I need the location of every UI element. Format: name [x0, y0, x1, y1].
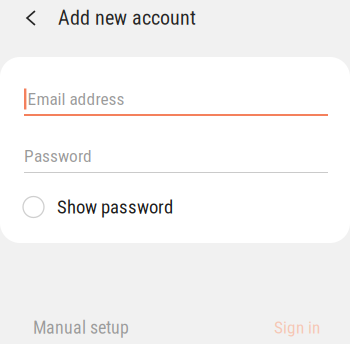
button[interactable]: Manual setup	[25, 308, 137, 344]
button[interactable]: Back	[16, 1, 46, 35]
staticText: Manual setup	[33, 317, 129, 338]
staticText: Email address	[27, 89, 124, 109]
staticText: Sign in	[274, 317, 320, 338]
staticText: Show password	[57, 196, 173, 218]
staticText: Add new account	[58, 6, 196, 30]
button[interactable]: Show password	[0, 190, 350, 224]
staticText: Password	[24, 146, 92, 166]
button[interactable]: Sign in	[266, 308, 328, 344]
